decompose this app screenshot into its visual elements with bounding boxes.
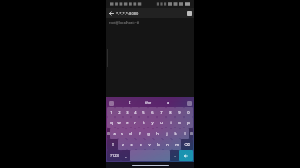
button[interactable]: t (139, 117, 148, 128)
button[interactable]: m (172, 139, 181, 150)
staticText: 5 (142, 110, 145, 115)
button[interactable]: Back (106, 8, 116, 18)
staticText: e (126, 120, 129, 125)
staticText: 9 (178, 110, 181, 115)
staticText: t (143, 120, 145, 125)
button[interactable]: Enter (179, 150, 193, 161)
button[interactable]: v (145, 139, 154, 150)
staticText: 4 (134, 110, 137, 115)
staticText: m (175, 142, 179, 147)
staticText: p (187, 120, 190, 125)
button[interactable]: a (110, 128, 118, 139)
staticText: 2 (118, 110, 121, 115)
staticText: 1 (110, 110, 113, 115)
button[interactable]: ⌫ (181, 139, 193, 150)
button[interactable]: h (153, 128, 162, 139)
staticText: c (140, 142, 142, 147)
staticText: root@localhost:~# (109, 20, 140, 25)
button[interactable]: l (180, 128, 189, 139)
button[interactable]: Key (189, 128, 193, 139)
staticText: 8 (169, 110, 172, 115)
button[interactable]: . (170, 150, 179, 161)
staticText: n (166, 142, 169, 147)
button[interactable]: 7 (157, 107, 166, 117)
button[interactable]: n (163, 139, 172, 150)
button[interactable]: 0 (184, 107, 193, 117)
button[interactable]: 3 (123, 107, 131, 117)
staticText: q (110, 120, 113, 125)
staticText: a (113, 131, 116, 136)
staticText: v (148, 142, 151, 147)
button[interactable]: f (135, 128, 144, 139)
button[interactable]: Emoji (107, 99, 115, 107)
staticText: the (145, 100, 152, 105)
button[interactable]: y (148, 117, 157, 128)
staticText: 0 (187, 110, 190, 115)
staticText: f (139, 131, 141, 136)
staticText: z (122, 142, 124, 147)
staticText: h (156, 131, 159, 136)
button[interactable]: j (162, 128, 171, 139)
staticText: . (174, 153, 176, 158)
button[interactable]: c (136, 139, 145, 150)
button[interactable]: r (131, 117, 139, 128)
button[interactable]: x (127, 139, 136, 150)
button[interactable]: p (184, 117, 193, 128)
button[interactable]: 5 (139, 107, 148, 117)
button[interactable]: o (175, 117, 184, 128)
button[interactable]: , (121, 150, 130, 161)
staticText: *.*.*.*:8080 (116, 11, 184, 16)
button[interactable]: 8 (166, 107, 175, 117)
button[interactable]: Voice input (185, 99, 193, 107)
button[interactable]: ?123 (107, 150, 121, 161)
button[interactable]: 1 (107, 107, 115, 117)
button[interactable]: g (144, 128, 153, 139)
button[interactable]: Key (107, 128, 110, 139)
staticText: u (160, 120, 163, 125)
staticText: b (157, 142, 160, 147)
staticText: w (117, 120, 121, 125)
button[interactable]: 2 (115, 107, 123, 117)
button[interactable]: ⇧ (107, 139, 118, 150)
staticText: d (129, 131, 132, 136)
button[interactable]: Space (130, 150, 170, 161)
staticText: o (178, 120, 181, 125)
staticText: l (184, 131, 186, 136)
staticText: s (121, 131, 123, 136)
button[interactable]: 6 (148, 107, 157, 117)
staticText: 7 (160, 110, 163, 115)
staticText: ?123 (110, 153, 119, 158)
staticText: k (174, 131, 177, 136)
staticText: g (147, 131, 150, 136)
button[interactable]: d (126, 128, 135, 139)
button[interactable]: 4 (131, 107, 139, 117)
staticText: i (170, 120, 172, 125)
button[interactable]: q (107, 117, 115, 128)
staticText: I (129, 100, 131, 105)
button[interactable]: b (154, 139, 163, 150)
staticText: , (125, 153, 127, 158)
staticText: 3 (126, 110, 129, 115)
staticText: j (166, 131, 168, 136)
staticText: ⇧ (111, 142, 115, 147)
staticText: y (151, 120, 154, 125)
button[interactable]: z (118, 139, 127, 150)
staticText: 6 (151, 110, 154, 115)
button[interactable]: u (157, 117, 166, 128)
button[interactable]: i (166, 117, 175, 128)
staticText: x (130, 142, 133, 147)
staticText: ⌫ (184, 142, 190, 147)
button[interactable]: 9 (175, 107, 184, 117)
button[interactable]: Save (184, 8, 194, 18)
staticText: r (134, 120, 136, 125)
button[interactable]: k (171, 128, 180, 139)
button[interactable]: e (123, 117, 131, 128)
staticText: a (167, 100, 170, 105)
button[interactable]: s (118, 128, 126, 139)
button[interactable]: w (115, 117, 123, 128)
